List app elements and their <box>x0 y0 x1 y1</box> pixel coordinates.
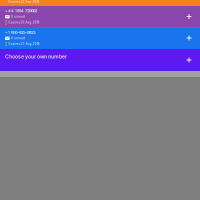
staticText: Expires 20 Aug 2018 <box>9 21 40 24</box>
button[interactable]: +44 1854 720002 <box>0 6 200 27</box>
staticText: +1 650-625-8823 <box>5 30 35 35</box>
staticText: Expires 27 Aug 2018 <box>9 42 40 46</box>
button[interactable]: +1 650-625-8823 <box>0 27 200 49</box>
staticText: 0 unread <box>11 37 25 40</box>
staticText: Choose your own number <box>5 53 67 60</box>
button[interactable]: Choose your own number <box>0 49 200 71</box>
staticText: Expires 20 Sep 2018 <box>9 0 40 4</box>
staticText: 0 unread <box>11 15 25 18</box>
staticText: +44 1854 720002 <box>5 8 37 13</box>
